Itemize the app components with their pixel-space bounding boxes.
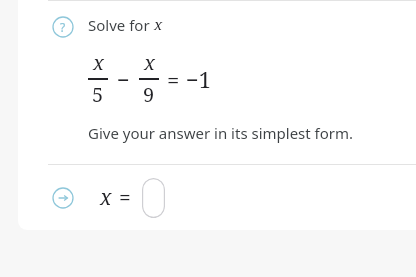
staticText: = [119, 183, 131, 212]
button[interactable]: Question [52, 16, 74, 38]
staticText: −1 [186, 64, 212, 94]
staticText: = [167, 64, 180, 94]
staticText: x [100, 183, 112, 212]
staticText: 5 [92, 81, 104, 108]
staticText: x [154, 14, 163, 34]
button[interactable]: Question [18, 4, 416, 143]
button[interactable]: Submit answer [52, 187, 74, 209]
staticText: Solve for [88, 15, 154, 35]
staticText: x [144, 49, 155, 76]
staticText: − [117, 64, 130, 94]
button[interactable]: Submit answer [18, 165, 416, 230]
staticText: 9 [143, 81, 155, 108]
button[interactable]: Answer input [142, 178, 165, 218]
staticText: ? [60, 19, 66, 35]
staticText: Give your answer in its simplest form. [88, 123, 354, 143]
staticText: x [93, 49, 104, 76]
